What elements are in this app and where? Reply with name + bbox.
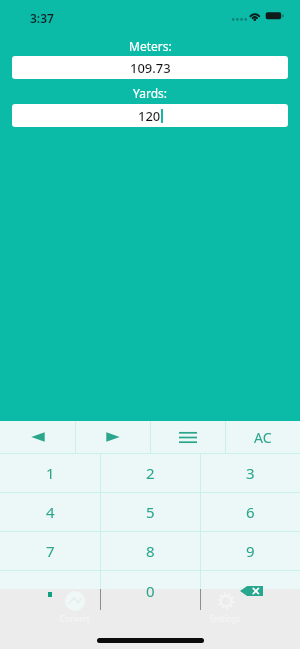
button[interactable]: Decimal point — [0, 571, 100, 610]
button[interactable]: Previous — [0, 421, 75, 453]
button[interactable]: 1 — [0, 453, 100, 492]
button[interactable]: 3 — [201, 453, 300, 492]
staticText: 9 — [246, 541, 255, 561]
staticText: 1 — [46, 463, 55, 483]
button[interactable]: AC — [226, 421, 300, 453]
staticText: 120 — [138, 107, 161, 125]
button[interactable]: 9 — [201, 531, 300, 570]
staticText: 3:37 — [30, 10, 54, 26]
button[interactable]: 120 — [12, 104, 288, 127]
staticText: 109.73 — [130, 59, 171, 77]
button[interactable]: 4 — [0, 492, 100, 531]
button[interactable]: 8 — [101, 531, 200, 570]
button[interactable]: Convert — [0, 589, 150, 629]
button[interactable]: 0 — [100, 571, 200, 610]
staticText: 3 — [246, 463, 255, 483]
staticText: 6 — [246, 502, 255, 522]
button[interactable]: 109.73 — [12, 56, 288, 79]
button[interactable]: 7 — [0, 531, 100, 570]
staticText: 8 — [146, 541, 155, 561]
staticText: 4 — [46, 502, 55, 522]
staticText: Meters: — [129, 38, 172, 54]
button[interactable]: Next — [76, 421, 150, 453]
button[interactable]: Backspace — [200, 571, 300, 610]
staticText: 2 — [146, 463, 155, 483]
staticText: 5 — [146, 502, 155, 522]
staticText: Yards: — [133, 85, 167, 101]
button[interactable]: 2 — [101, 453, 200, 492]
button[interactable]: Menu — [151, 421, 225, 453]
staticText: 7 — [46, 541, 55, 561]
staticText: AC — [254, 428, 272, 447]
button[interactable]: 6 — [201, 492, 300, 531]
button[interactable]: 5 — [101, 492, 200, 531]
button[interactable]: Settings — [150, 589, 300, 629]
staticText: 0 — [146, 581, 155, 601]
